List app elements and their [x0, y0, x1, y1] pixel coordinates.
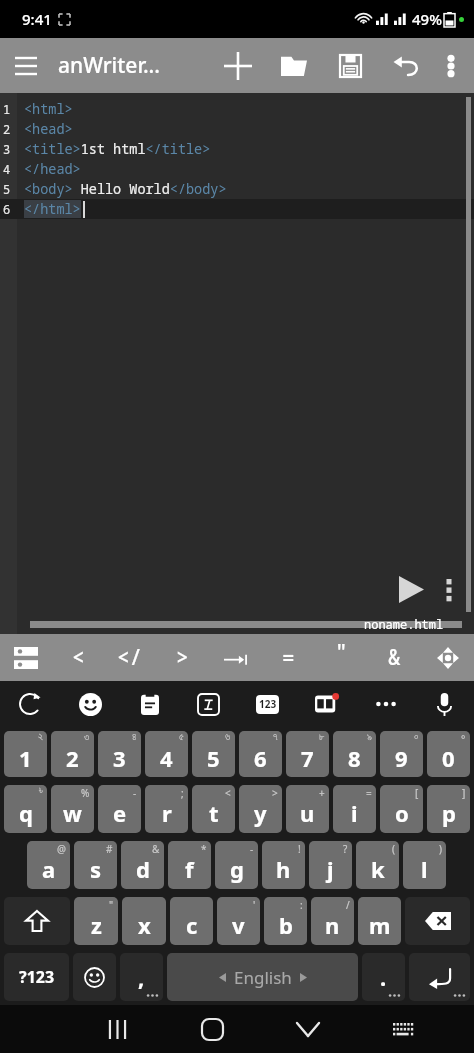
button[interactable]: More options [434, 38, 468, 93]
staticText: ! [298, 842, 301, 856]
staticText: & [388, 643, 401, 672]
button[interactable]: Save [322, 38, 378, 93]
button[interactable]: ৮ [286, 731, 329, 777]
button[interactable]: Modes [297, 681, 356, 727]
button[interactable]: ৯ [333, 731, 376, 777]
button[interactable]: anWriter... [58, 51, 161, 80]
button[interactable]: " [74, 897, 118, 945]
staticText: 49% [412, 9, 442, 29]
button[interactable]: ? [309, 841, 352, 889]
button[interactable]: ] [427, 785, 470, 833]
staticText: ৯ [367, 732, 372, 742]
button[interactable]: x [122, 897, 166, 945]
button[interactable]: Open file [266, 38, 322, 93]
staticText: @ [57, 842, 66, 856]
button[interactable]: ২ [4, 731, 47, 777]
button[interactable]: ৬ [192, 731, 235, 777]
button[interactable]: Tab [209, 634, 262, 681]
button[interactable]: ; [145, 785, 188, 833]
button[interactable]: 1 [0, 93, 474, 634]
staticText: 4 [160, 743, 173, 773]
button[interactable]: * [168, 841, 211, 889]
button[interactable]: % [51, 785, 94, 833]
button[interactable]: Change keyboard [355, 1005, 450, 1053]
button[interactable]: Enter [409, 953, 470, 1001]
button[interactable]: > [239, 785, 282, 833]
button[interactable]: - [215, 841, 258, 889]
button[interactable]: , [120, 953, 163, 1001]
staticText: p [442, 798, 456, 828]
button[interactable]: ৪ [98, 731, 141, 777]
button[interactable]: m [358, 897, 401, 945]
button[interactable]: & [368, 634, 421, 681]
button[interactable]: / [311, 897, 354, 945]
button[interactable]: Numbers [238, 681, 297, 727]
button[interactable]: ৳ [4, 785, 47, 833]
button[interactable]: English [167, 953, 358, 1001]
staticText: English [234, 966, 292, 989]
button[interactable]: Editor options [434, 566, 464, 612]
button[interactable]: Recents [70, 1005, 165, 1053]
staticText: > [272, 786, 278, 800]
button[interactable]: ?123 [4, 953, 69, 1001]
staticText: , [138, 962, 145, 992]
staticText: noname.html [364, 616, 444, 632]
button[interactable]: </ [104, 634, 156, 681]
button[interactable]: < [192, 785, 235, 833]
button[interactable]: = [333, 785, 376, 833]
staticText: s [90, 854, 102, 884]
button[interactable]: Clipboard [120, 681, 179, 727]
button[interactable]: c [170, 897, 213, 945]
button[interactable]: @ [27, 841, 70, 889]
button[interactable]: ০ [380, 731, 423, 777]
staticText: w [63, 798, 82, 828]
button[interactable]: More [356, 681, 415, 727]
button[interactable]: ° [427, 731, 470, 777]
staticText: j [327, 854, 334, 884]
button[interactable]: ! [262, 841, 305, 889]
button[interactable]: Voice input [415, 681, 474, 727]
button[interactable]: Emoji [73, 953, 116, 1001]
button[interactable]: Add [210, 38, 266, 93]
staticText: q [19, 798, 33, 828]
button[interactable]: ৭ [239, 731, 282, 777]
staticText: </html> [24, 200, 81, 218]
button[interactable]: Shift [4, 897, 70, 945]
button[interactable]: ৫ [145, 731, 188, 777]
button[interactable]: Menu [0, 40, 52, 92]
staticText: ৳ [39, 786, 43, 796]
button[interactable]: Translate [0, 681, 60, 727]
staticText: d [136, 854, 150, 884]
button[interactable]: Text formatting [179, 681, 238, 727]
button[interactable]: : [264, 897, 307, 945]
button[interactable]: + [286, 785, 329, 833]
button[interactable]: ( [356, 841, 399, 889]
button[interactable]: < [52, 634, 104, 681]
button[interactable]: = [262, 634, 315, 681]
staticText: v [232, 910, 245, 940]
staticText: 9 [395, 743, 408, 773]
button[interactable]: > [156, 634, 209, 681]
button[interactable]: Run [388, 566, 434, 612]
staticText: 4 [3, 161, 11, 177]
button[interactable]: ) [403, 841, 446, 889]
button[interactable]: Hide keyboard [260, 1005, 355, 1053]
button[interactable]: & [121, 841, 164, 889]
staticText: + [319, 786, 325, 800]
button[interactable]: Undo [378, 38, 434, 93]
staticText: ( [392, 842, 395, 856]
button[interactable]: - [98, 785, 141, 833]
button[interactable]: Move cursor [421, 634, 474, 681]
button[interactable]: [ [380, 785, 423, 833]
staticText: * [201, 842, 207, 856]
button[interactable]: Home [165, 1005, 260, 1053]
button[interactable]: ' [217, 897, 260, 945]
button[interactable]: " [315, 634, 368, 681]
button[interactable]: # [74, 841, 117, 889]
button[interactable]: . [362, 953, 405, 1001]
button[interactable]: Snippets [0, 634, 52, 681]
staticText: e [113, 798, 127, 828]
button[interactable]: Stickers [60, 681, 120, 727]
button[interactable]: Backspace [405, 897, 470, 945]
button[interactable]: ৩ [51, 731, 94, 777]
